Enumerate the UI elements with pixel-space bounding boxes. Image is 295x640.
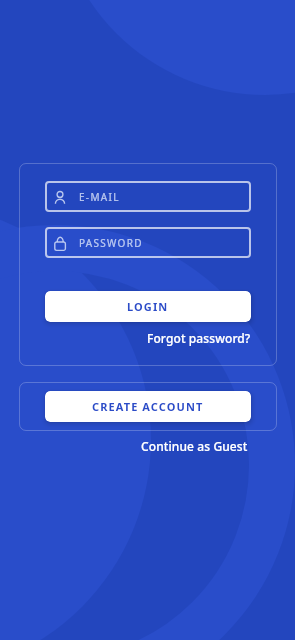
button[interactable]: CREATE ACCOUNT [45,391,251,422]
button[interactable]: LOGIN [45,291,251,322]
staticText: CREATE ACCOUNT [92,399,204,414]
staticText: PASSWORD [79,236,143,250]
button[interactable]: Continue as Guest [0,438,248,454]
staticText: Forgot password? [147,330,251,346]
button[interactable]: E-MAIL [45,181,251,212]
staticText: E-MAIL [79,190,120,204]
staticText: Continue as Guest [141,438,248,454]
staticText: LOGIN [127,299,169,314]
button[interactable]: Forgot password? [45,330,251,346]
button[interactable]: PASSWORD [45,227,251,258]
